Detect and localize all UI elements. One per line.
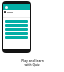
button[interactable] [5,24,28,27]
button[interactable]: Quiz app bar [3,4,30,10]
button[interactable] [5,20,28,23]
button[interactable] [5,28,28,31]
button[interactable] [4,11,18,13]
staticText: Play and learn [21,59,44,63]
button[interactable] [5,32,28,35]
staticText: with Quiz [24,63,40,67]
button[interactable] [5,36,28,39]
